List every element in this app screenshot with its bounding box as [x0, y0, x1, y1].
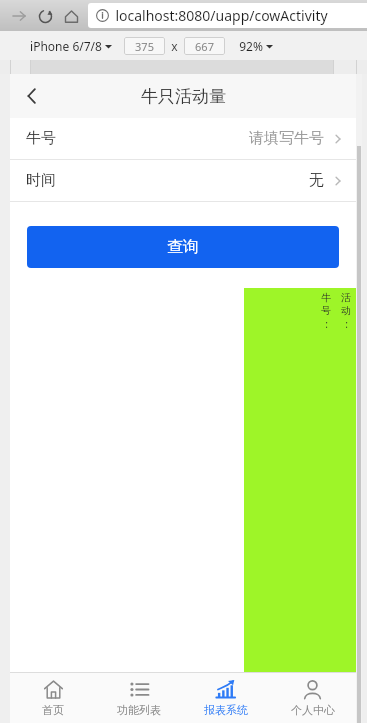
staticText: localhost:8080/uapp/cowActivity [115, 6, 328, 25]
staticText: : [325, 317, 328, 331]
button[interactable]: 个人中心 [269, 673, 356, 723]
button[interactable]: Forward [6, 3, 32, 29]
staticText: 667 [195, 39, 214, 54]
button[interactable]: Home [58, 3, 84, 29]
staticText: 92% [239, 38, 263, 54]
staticText: 无 [309, 171, 324, 190]
button[interactable]: localhost:8080/uapp/cowActivity [88, 3, 367, 28]
staticText: 功能列表 [117, 703, 161, 717]
staticText: 动 [341, 304, 351, 317]
button[interactable]: Reload [32, 3, 58, 29]
staticText: 请填写牛号 [249, 129, 324, 148]
staticText: 375 [135, 39, 154, 54]
button[interactable]: 报表系统 [182, 673, 269, 723]
button[interactable]: 667 [184, 37, 225, 55]
staticText: 报表系统 [204, 703, 248, 717]
button[interactable]: 首页 [10, 673, 96, 723]
staticText: 号 [321, 304, 331, 317]
staticText: 牛 [321, 291, 331, 304]
button[interactable]: 牛号 [10, 118, 356, 159]
button[interactable]: 92% [239, 38, 273, 54]
button[interactable]: Back [10, 74, 54, 118]
staticText: 查询 [167, 237, 199, 257]
button[interactable]: 375 [124, 37, 165, 55]
button[interactable]: 查询 [27, 226, 339, 268]
staticText: iPhone 6/7/8 [30, 38, 102, 54]
staticText: 个人中心 [291, 703, 335, 717]
staticText: 时间 [26, 171, 56, 190]
button[interactable]: 功能列表 [96, 673, 182, 723]
staticText: x [171, 38, 178, 54]
button[interactable]: iPhone 6/7/8 [30, 38, 112, 54]
staticText: : [345, 317, 348, 331]
staticText: 牛只活动量 [141, 86, 226, 107]
button[interactable]: 时间 [10, 160, 356, 201]
staticText: 牛号 [26, 129, 56, 148]
staticText: 活 [341, 291, 351, 304]
staticText: 首页 [42, 703, 64, 717]
